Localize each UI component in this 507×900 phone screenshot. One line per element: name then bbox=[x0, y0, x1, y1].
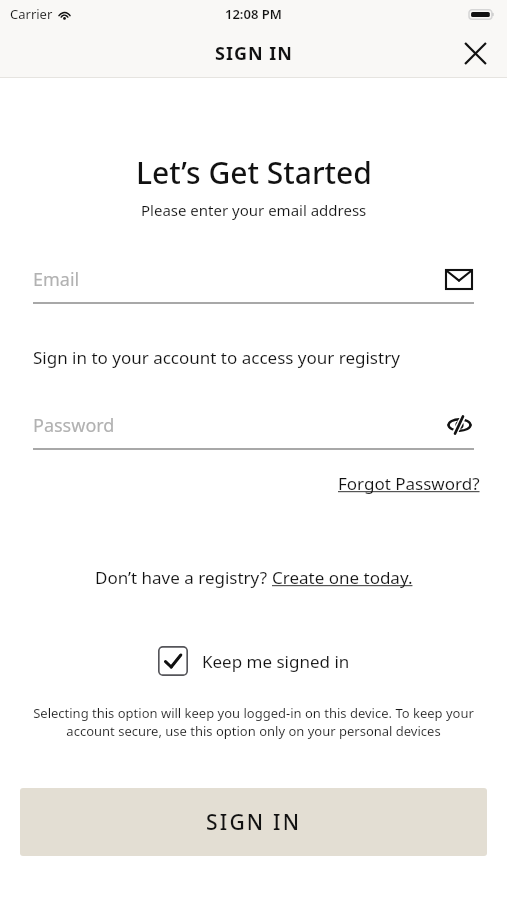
staticText: Don’t have a registry? bbox=[95, 566, 272, 589]
staticText: 12:08 PM bbox=[225, 5, 282, 23]
button[interactable]: Password bbox=[33, 402, 474, 448]
button[interactable]: Email bbox=[444, 264, 474, 294]
button[interactable]: Email bbox=[33, 256, 474, 302]
staticText: SIGN IN bbox=[206, 808, 302, 837]
staticText: Sign in to your account to access your r… bbox=[33, 346, 400, 369]
staticText: SIGN IN bbox=[215, 41, 293, 66]
button[interactable]: Show password bbox=[444, 410, 474, 440]
staticText: Please enter your email address bbox=[141, 200, 367, 220]
button[interactable]: Forgot Password? bbox=[338, 472, 480, 495]
staticText: Forgot Password? bbox=[338, 472, 480, 495]
staticText: Let’s Get Started bbox=[136, 152, 372, 193]
staticText: Selecting this option will keep you logg… bbox=[22, 704, 485, 740]
button[interactable]: Create one today. bbox=[272, 566, 413, 589]
button[interactable]: Close bbox=[457, 35, 493, 71]
staticText: Email bbox=[33, 267, 444, 292]
staticText: Password bbox=[33, 413, 444, 438]
staticText: Create one today. bbox=[272, 566, 413, 589]
staticText: Keep me signed in bbox=[202, 650, 350, 673]
staticText: Carrier bbox=[10, 5, 53, 23]
button[interactable]: Keep me signed in bbox=[158, 646, 350, 676]
button[interactable]: SIGN IN bbox=[20, 788, 487, 856]
